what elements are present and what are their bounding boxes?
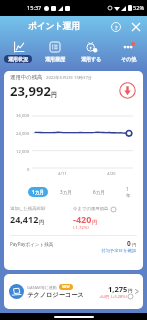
- staticText: 4/25: [107, 171, 116, 177]
- staticText: GAFAM等に連動: [27, 285, 57, 290]
- staticText: 0: [127, 239, 131, 248]
- staticText: +64円 (+5.28%): [99, 294, 127, 299]
- staticText: NEW: [62, 285, 70, 289]
- staticText: その他: [121, 56, 137, 62]
- staticText: 今までの運用損益: [73, 206, 109, 212]
- staticText: 追加した残高総額: [10, 206, 46, 212]
- staticText: 1,275: [108, 284, 128, 294]
- staticText: 52%: [133, 4, 145, 12]
- button[interactable]: 閉じる: [128, 19, 144, 35]
- staticText: 運用状況: [8, 56, 28, 62]
- staticText: PayPayポイント残高: [10, 241, 54, 247]
- staticText: 2022年5月2日 15時37分: [46, 75, 92, 81]
- staticText: 4/11: [58, 171, 67, 177]
- staticText: 円: [92, 219, 97, 225]
- staticText: テクノロジーコース: [27, 291, 84, 299]
- staticText: 円: [128, 288, 133, 294]
- staticText: 運用中の残高: [10, 74, 43, 81]
- staticText: 6カ月: [93, 189, 105, 195]
- staticText: 運用する: [81, 56, 102, 62]
- staticText: 3カ月: [60, 189, 72, 195]
- staticText: 円: [39, 219, 44, 225]
- staticText: 24,412: [10, 213, 39, 225]
- staticText: 12,000: [16, 149, 30, 155]
- staticText: 運用履歴: [45, 56, 65, 62]
- button[interactable]: 1年: [122, 184, 137, 200]
- staticText: 0: [27, 167, 30, 173]
- staticText: ポイント運用: [28, 21, 80, 32]
- button[interactable]: 付与予定日を確認: [101, 248, 137, 254]
- button[interactable]: 更新: [118, 81, 137, 100]
- staticText: -420: [73, 213, 92, 225]
- button[interactable]: 運用する: [73, 37, 110, 71]
- button[interactable]: その他: [110, 37, 147, 71]
- staticText: 36,000: [16, 113, 30, 119]
- button[interactable]: 運用状況: [0, 37, 36, 71]
- staticText: ?: [115, 24, 118, 31]
- staticText: 付与予定日を確認: [101, 248, 137, 254]
- button[interactable]: 運用履歴: [36, 37, 73, 71]
- button[interactable]: 3カ月: [56, 187, 76, 197]
- button[interactable]: GAFAM等に連動: [4, 274, 143, 309]
- button[interactable]: 1カ月: [28, 187, 48, 197]
- staticText: 1年: [126, 186, 133, 198]
- staticText: 円: [51, 91, 58, 99]
- button[interactable]: 6カ月: [89, 187, 109, 197]
- button[interactable]: ヘルプ: [108, 19, 124, 35]
- staticText: 1カ月: [32, 189, 44, 195]
- staticText: 15:37: [27, 4, 42, 12]
- staticText: (-1.72%): [73, 225, 89, 231]
- staticText: 23,992: [10, 82, 51, 100]
- staticText: 円: [132, 242, 137, 248]
- staticText: 24,000: [16, 131, 30, 137]
